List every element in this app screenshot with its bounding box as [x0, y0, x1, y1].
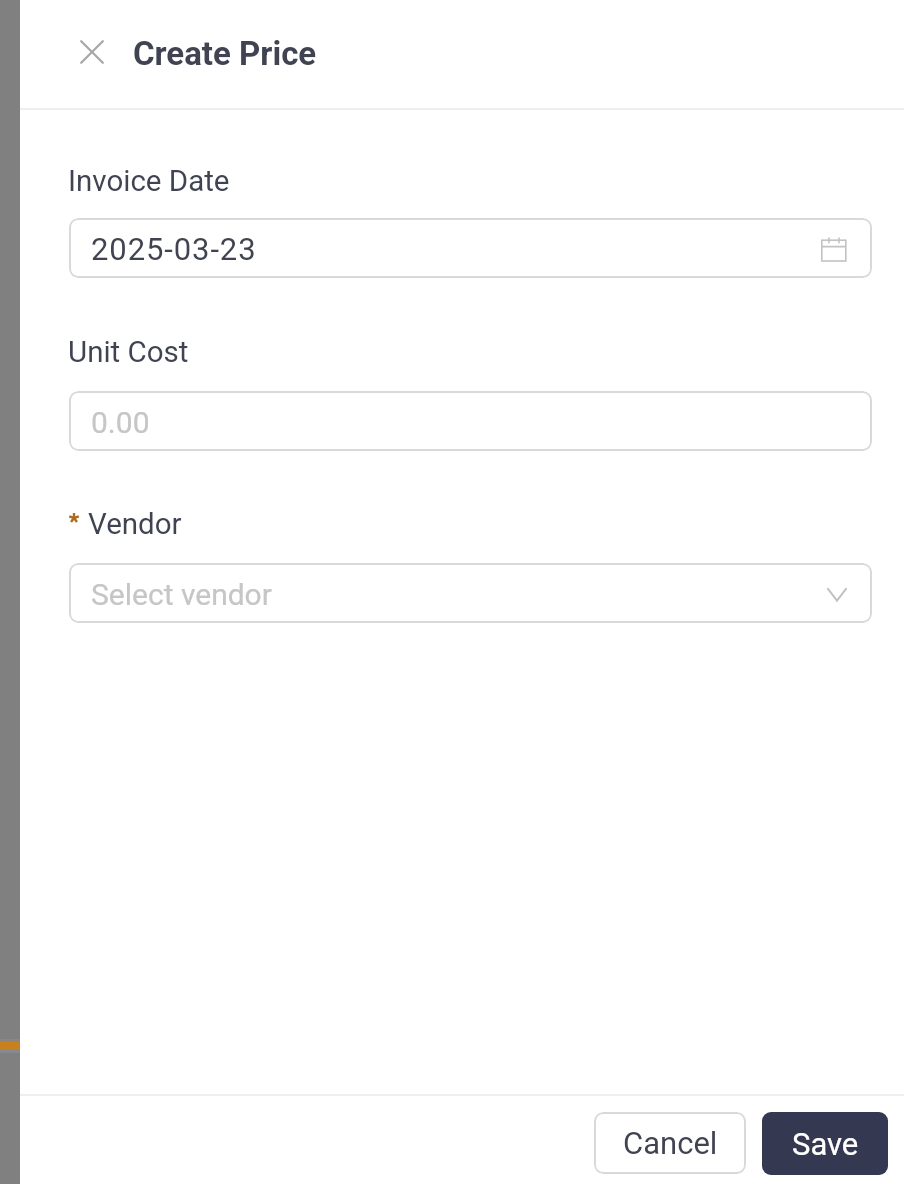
staticText: 0.00 — [91, 405, 150, 440]
button[interactable]: Select vendor — [69, 563, 872, 623]
button[interactable]: Save — [762, 1112, 888, 1175]
staticText: Unit Cost — [68, 335, 189, 370]
other: Open vendor list — [825, 582, 849, 604]
staticText: Select vendor — [91, 577, 272, 612]
staticText: Invoice Date — [68, 164, 230, 199]
staticText: Save — [792, 1126, 859, 1162]
staticText: Create Price — [133, 34, 317, 73]
other: Pick date — [821, 237, 847, 263]
button[interactable]: 0.00 — [69, 391, 872, 451]
staticText: Cancel — [623, 1125, 718, 1161]
button[interactable]: Cancel — [594, 1112, 746, 1174]
staticText: Vendor — [88, 507, 182, 542]
button[interactable]: Close dialog — [68, 28, 116, 76]
staticText: 2025-03-23 — [91, 231, 257, 267]
button[interactable]: 2025-03-23 — [69, 218, 872, 278]
